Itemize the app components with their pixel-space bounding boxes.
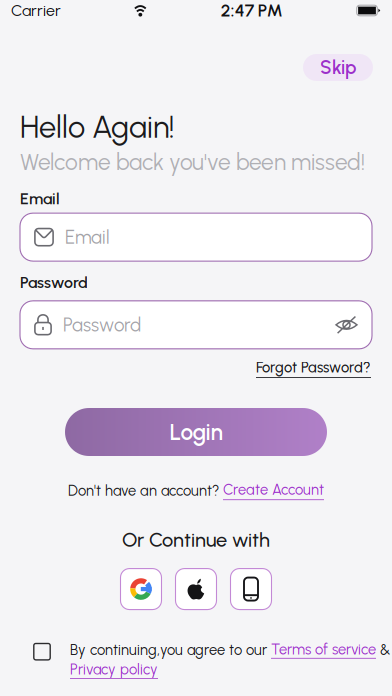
staticText: Email — [65, 226, 110, 248]
button[interactable]: Continue with Apple — [175, 569, 216, 610]
button[interactable]: Login — [65, 408, 327, 456]
staticText: Don't have an account? — [68, 482, 223, 499]
button[interactable]: Privacy policy — [70, 661, 158, 679]
staticText: Terms of service — [271, 641, 376, 658]
button[interactable]: Terms of service — [271, 641, 376, 659]
staticText: Email — [20, 189, 60, 208]
staticText: & — [376, 641, 390, 658]
staticText: Carrier — [11, 1, 61, 20]
staticText: By continuing,you agree to our — [70, 641, 271, 658]
staticText: Welcome back you've been missed! — [20, 149, 365, 175]
staticText: Create Account — [223, 481, 324, 498]
staticText: Privacy policy — [70, 661, 158, 678]
button[interactable]: Agree to terms — [31, 641, 53, 663]
button[interactable]: Create Account — [223, 481, 324, 500]
staticText: Forgot Password? — [256, 359, 371, 376]
button[interactable]: Forgot Password? — [256, 359, 371, 378]
staticText: Password — [63, 314, 141, 336]
staticText: Password — [20, 273, 88, 292]
staticText: Skip — [320, 57, 356, 78]
staticText: 2:47 PM — [221, 0, 283, 21]
staticText: Or Continue with — [122, 528, 270, 552]
button[interactable]: Skip — [303, 54, 373, 81]
staticText: Hello Again! — [20, 109, 175, 145]
staticText: Login — [169, 419, 222, 445]
button[interactable]: Continue with Google — [120, 569, 161, 610]
button[interactable]: Continue with phone number — [230, 569, 271, 610]
